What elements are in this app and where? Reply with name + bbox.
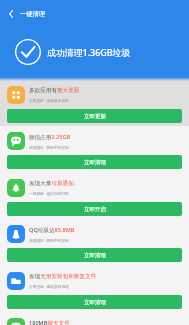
staticText: 一键屏蔽 · 减少消息打扰 [29,191,69,196]
staticText: 微信占用2.25GB [29,133,71,141]
staticText: 清理缓存 · 释放手机空间 [29,145,69,150]
staticText: 立即开启 [84,206,106,213]
button[interactable]: QQ垃圾达85.8MB [7,225,75,243]
staticText: 立即清理 [84,299,106,306]
staticText: 发现无用安装包和重复文件 [29,273,97,280]
button[interactable]: 发现无用安装包和重复文件 [7,272,97,290]
staticText: 立即更新 · 体验最新功能 [29,98,69,103]
staticText: 立即更新 [84,113,106,120]
staticText: 立即清理 [84,159,106,166]
button[interactable]: 发现大量垃圾通知 [7,179,74,197]
staticText: 清理缓存 · 释放手机空间 [29,238,69,243]
button[interactable]: 立即清理 [7,155,182,169]
button[interactable]: 微信占用2.25GB [7,132,71,150]
staticText: 一键清理 [20,10,46,18]
staticText: 多款应用有重大更新 [29,87,80,94]
button[interactable]: Back [0,0,46,27]
button[interactable]: 立即清理 [7,248,182,262]
staticText: 占用空间 · 建议及时清理 [29,284,69,289]
staticText: 180MB聊天文件 [29,319,70,325]
button[interactable]: 立即更新 [7,109,182,123]
staticText: QQ垃圾达85.8MB [29,226,75,234]
staticText: 发现大量垃圾通知 [29,180,74,187]
staticText: 立即清理 [84,252,106,259]
staticText: 成功清理1.36GB垃圾 [47,46,131,58]
button[interactable]: 180MB聊天文件 [7,318,70,325]
button[interactable]: 多款应用有重大更新 [7,86,80,104]
button[interactable]: 立即开启 [7,202,182,216]
button[interactable]: 立即清理 [7,295,182,309]
